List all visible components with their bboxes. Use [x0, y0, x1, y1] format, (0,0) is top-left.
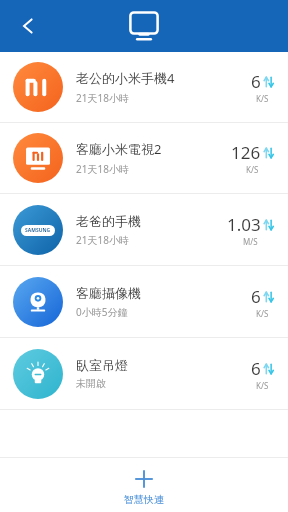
button[interactable]: SAMSUNG — [0, 194, 288, 265]
button[interactable]: 客廳攝像機 — [0, 266, 288, 337]
staticText: 0小時5分鐘 — [76, 305, 128, 319]
staticText: 臥室吊燈 — [76, 357, 128, 373]
staticText: 客廳小米電視2 — [76, 140, 162, 158]
staticText: 6 — [251, 357, 261, 380]
staticText: M/S — [243, 236, 258, 247]
staticText: 智慧快連 — [124, 493, 164, 506]
staticText: K/S — [256, 308, 269, 319]
staticText: 老爸的手機 — [76, 213, 141, 229]
button[interactable]: 老公的小米手機4 — [0, 52, 288, 122]
button[interactable]: Back — [6, 4, 50, 48]
staticText: 126 — [231, 141, 261, 164]
staticText: 未開啟 — [76, 377, 106, 390]
staticText: 6 — [251, 70, 261, 93]
staticText: 老公的小米手機4 — [76, 69, 175, 87]
staticText: K/S — [256, 93, 269, 104]
staticText: K/S — [246, 164, 259, 175]
staticText: K/S — [256, 380, 269, 391]
staticText: 21天18小時 — [76, 233, 129, 247]
button[interactable]: 客廳小米電視2 — [0, 123, 288, 193]
staticText: 1.03 — [227, 213, 261, 236]
staticText: 6 — [251, 285, 261, 308]
button[interactable]: 智慧快連 — [124, 468, 164, 506]
staticText: 21天18小時 — [76, 162, 129, 176]
staticText: 客廳攝像機 — [76, 285, 141, 301]
staticText: 21天18小時 — [76, 91, 129, 105]
staticText: SAMSUNG — [25, 227, 51, 234]
button[interactable]: 臥室吊燈 — [0, 338, 288, 409]
